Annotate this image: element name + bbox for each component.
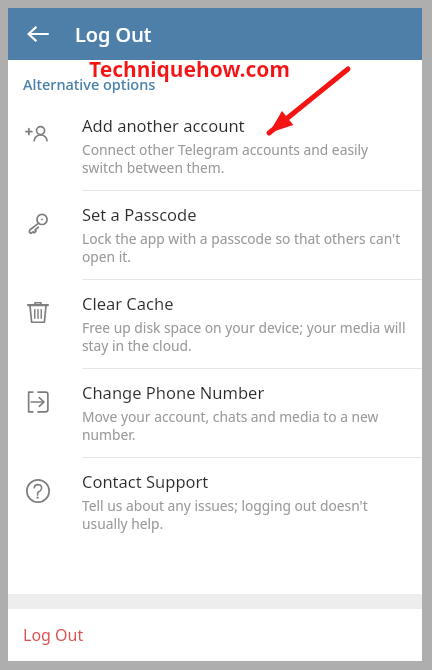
staticText: Log Out <box>75 21 152 48</box>
staticText: Clear Cache <box>82 292 174 314</box>
staticText: Change Phone Number <box>82 381 265 403</box>
button[interactable]: Log Out <box>8 609 422 661</box>
staticText: Lock the app with a passcode so that oth… <box>82 229 408 266</box>
staticText: Techniquehow.com <box>89 55 290 84</box>
staticText: Tell us about any issues; logging out do… <box>82 496 408 533</box>
button[interactable]: Set a Passcode <box>8 191 422 279</box>
button[interactable]: Contact Support <box>8 458 422 546</box>
button[interactable]: Clear Cache <box>8 280 422 368</box>
button[interactable]: Change Phone Number <box>8 369 422 457</box>
button[interactable]: Add another account <box>8 102 422 190</box>
staticText: Add another account <box>82 114 245 136</box>
staticText: Log Out <box>23 624 84 646</box>
staticText: Set a Passcode <box>82 203 197 225</box>
button[interactable]: Back <box>16 12 60 56</box>
staticText: Free up disk space on your device; your … <box>82 318 408 355</box>
staticText: Connect other Telegram accounts and easi… <box>82 140 408 177</box>
staticText: Alternative options <box>23 74 156 94</box>
staticText: Contact Support <box>82 470 209 492</box>
staticText: Move your account, chats and media to a … <box>82 407 408 444</box>
